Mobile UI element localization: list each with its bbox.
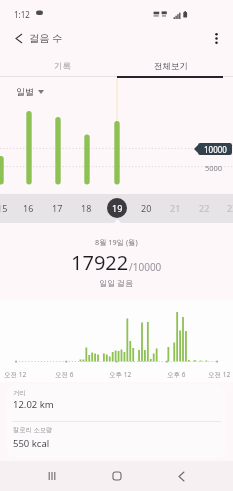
button[interactable]: 거리: [7, 384, 226, 421]
button[interactable]: 17: [44, 194, 70, 222]
button[interactable]: 기록: [10, 56, 115, 76]
button[interactable]: 19: [104, 194, 130, 222]
staticText: 전체보기: [154, 61, 188, 72]
button[interactable]: 15: [0, 194, 15, 222]
button[interactable]: 21: [162, 194, 188, 222]
button[interactable]: Back: [8, 28, 29, 49]
button[interactable]: Home: [98, 461, 136, 491]
staticText: 일일 걸음: [99, 277, 134, 288]
button[interactable]: More options: [206, 28, 227, 49]
staticText: 550 kcal: [13, 437, 50, 450]
button[interactable]: 23: [219, 194, 233, 222]
button[interactable]: 22: [191, 194, 217, 222]
staticText: 19: [112, 202, 123, 214]
staticText: 오전 12: [4, 370, 27, 379]
staticText: 22: [199, 202, 210, 214]
staticText: 거리: [13, 389, 26, 397]
staticText: 1:12: [14, 9, 30, 20]
staticText: 칼로리 소모량: [13, 425, 53, 434]
staticText: 23: [227, 202, 233, 214]
staticText: 오후 6: [167, 370, 186, 379]
staticText: 15: [0, 202, 8, 214]
staticText: 8월 19일 (월): [95, 237, 138, 247]
staticText: 오전 6: [55, 370, 74, 379]
button[interactable]: 일별: [16, 84, 44, 99]
staticText: 21: [170, 202, 181, 214]
staticText: 20: [141, 202, 152, 214]
staticText: 16: [23, 202, 34, 214]
staticText: 걸음 수: [29, 31, 63, 45]
button[interactable]: 전체보기: [118, 56, 223, 76]
button[interactable]: Recent apps: [33, 461, 71, 491]
staticText: 18: [81, 202, 92, 214]
button[interactable]: 칼로리 소모량: [7, 421, 226, 458]
staticText: 10000: [204, 144, 227, 155]
button[interactable]: 20: [133, 194, 159, 222]
staticText: 일별: [16, 86, 34, 97]
button[interactable]: 18: [73, 194, 99, 222]
staticText: 12.02 km: [13, 398, 54, 411]
staticText: 17922: [71, 249, 129, 276]
staticText: /10000: [129, 260, 162, 274]
staticText: 오후 12: [109, 370, 132, 379]
button[interactable]: Back: [162, 461, 200, 491]
staticText: 기록: [54, 61, 71, 72]
button[interactable]: 16: [15, 194, 41, 222]
staticText: 오전 12: [208, 370, 231, 379]
staticText: 5000: [205, 163, 223, 173]
staticText: 17: [52, 202, 63, 214]
